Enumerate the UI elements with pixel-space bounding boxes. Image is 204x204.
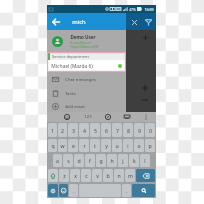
button[interactable]: Chat messages xyxy=(52,72,126,86)
button[interactable]: i xyxy=(123,139,133,152)
staticText: l xyxy=(144,157,146,164)
button[interactable]: n xyxy=(114,169,124,182)
staticText: Service department xyxy=(52,54,89,59)
staticText: https://demo.nl/47 xyxy=(70,45,99,49)
button[interactable]: Shift xyxy=(48,169,58,182)
staticText: 5 xyxy=(94,127,97,134)
button[interactable]: Filter xyxy=(142,16,154,28)
staticText: . xyxy=(73,187,75,194)
button[interactable]: 5 xyxy=(90,123,100,137)
staticText: q xyxy=(51,142,55,149)
button[interactable]: 3 xyxy=(68,123,78,137)
staticText: 8 xyxy=(127,127,130,134)
button[interactable]: . xyxy=(69,184,78,197)
button[interactable]: j xyxy=(118,154,128,167)
button[interactable]: g xyxy=(96,154,106,167)
button[interactable]: h xyxy=(107,154,117,167)
staticText: g xyxy=(99,157,103,164)
button[interactable]: 4 xyxy=(79,123,89,137)
staticText: j xyxy=(122,157,124,164)
button[interactable]: Clear search xyxy=(128,16,140,28)
button[interactable]: Backspace xyxy=(136,169,155,182)
staticText: 4 xyxy=(83,127,86,134)
button[interactable]: d xyxy=(74,154,84,167)
staticText: 16:59 xyxy=(144,7,154,12)
staticText: m xyxy=(128,172,133,179)
staticText: w xyxy=(60,142,65,149)
button[interactable]: 2 xyxy=(58,123,67,137)
button[interactable]: r xyxy=(79,139,89,152)
button[interactable]: b xyxy=(103,169,113,182)
staticText: d.user@xyz.nl xyxy=(70,41,91,45)
staticText: 9 xyxy=(138,127,141,134)
button[interactable]: 6 xyxy=(101,123,111,137)
staticText: Tasks xyxy=(65,90,76,96)
staticText: Demo User xyxy=(70,34,96,40)
staticText: e xyxy=(72,142,75,149)
staticText: b xyxy=(106,172,110,179)
button[interactable]: 9 xyxy=(134,123,144,137)
button[interactable]: c xyxy=(81,169,91,182)
button[interactable]: 123 xyxy=(81,112,94,122)
button[interactable]: Clipboard xyxy=(122,112,132,122)
staticText: 0 xyxy=(149,127,152,134)
button[interactable]: a xyxy=(53,154,62,167)
button[interactable]: 1 xyxy=(48,123,57,137)
button[interactable]: z xyxy=(59,169,69,182)
staticText: Add asset xyxy=(65,103,85,109)
staticText: 47% xyxy=(129,7,136,12)
button[interactable]: Emoji xyxy=(62,112,72,122)
button[interactable]: Zoom out xyxy=(140,95,150,105)
button[interactable]: 8 xyxy=(123,123,133,137)
button[interactable]: v xyxy=(92,169,102,182)
button[interactable]: p xyxy=(145,139,155,152)
button[interactable]: Michael (Mazda 6) xyxy=(51,60,122,72)
button[interactable]: My location xyxy=(141,33,150,42)
staticText: f xyxy=(89,157,91,164)
button[interactable]: x xyxy=(70,169,80,182)
button[interactable]: 7 xyxy=(112,123,122,137)
staticText: n xyxy=(117,172,121,179)
button[interactable]: Zoom in xyxy=(140,83,150,93)
staticText: . xyxy=(126,187,128,194)
staticText: mich xyxy=(72,18,86,26)
button[interactable]: . xyxy=(122,184,131,197)
button[interactable]: y xyxy=(101,139,111,152)
button[interactable]: w xyxy=(58,139,67,152)
button[interactable]: s xyxy=(63,154,73,167)
staticText: p xyxy=(148,142,152,149)
button[interactable]: f xyxy=(85,154,95,167)
button[interactable]: Back xyxy=(47,13,126,30)
button[interactable]: Settings xyxy=(48,184,58,197)
staticText: t xyxy=(94,142,96,149)
button[interactable]: q xyxy=(48,139,57,152)
staticText: Chat messages xyxy=(65,76,96,82)
button[interactable]: e xyxy=(68,139,78,152)
button[interactable]: k xyxy=(129,154,139,167)
staticText: z xyxy=(63,172,66,179)
button[interactable]: u xyxy=(112,139,122,152)
staticText: u xyxy=(115,142,119,149)
button[interactable]: Emoji xyxy=(59,184,68,197)
staticText: 1 xyxy=(51,127,54,134)
button[interactable]: t xyxy=(90,139,100,152)
staticText: 3 xyxy=(72,127,75,134)
button[interactable]: More options xyxy=(141,112,151,122)
button[interactable]: Back xyxy=(50,16,61,27)
button[interactable]: Demo User xyxy=(52,30,126,52)
button[interactable]: Tasks xyxy=(52,86,126,100)
button[interactable]: Stickers xyxy=(103,112,113,122)
staticText: s xyxy=(67,157,70,164)
staticText: 6 xyxy=(105,127,108,134)
button[interactable]: l xyxy=(140,154,150,167)
button[interactable]: 0 xyxy=(145,123,155,137)
button[interactable]: o xyxy=(134,139,144,152)
staticText: i xyxy=(127,142,129,149)
staticText: y xyxy=(105,142,108,149)
staticText: c xyxy=(85,172,88,179)
button[interactable]: Add asset xyxy=(52,100,126,112)
button[interactable]: m xyxy=(125,169,135,182)
button[interactable]: Search xyxy=(132,184,155,197)
staticText: d xyxy=(77,157,81,164)
